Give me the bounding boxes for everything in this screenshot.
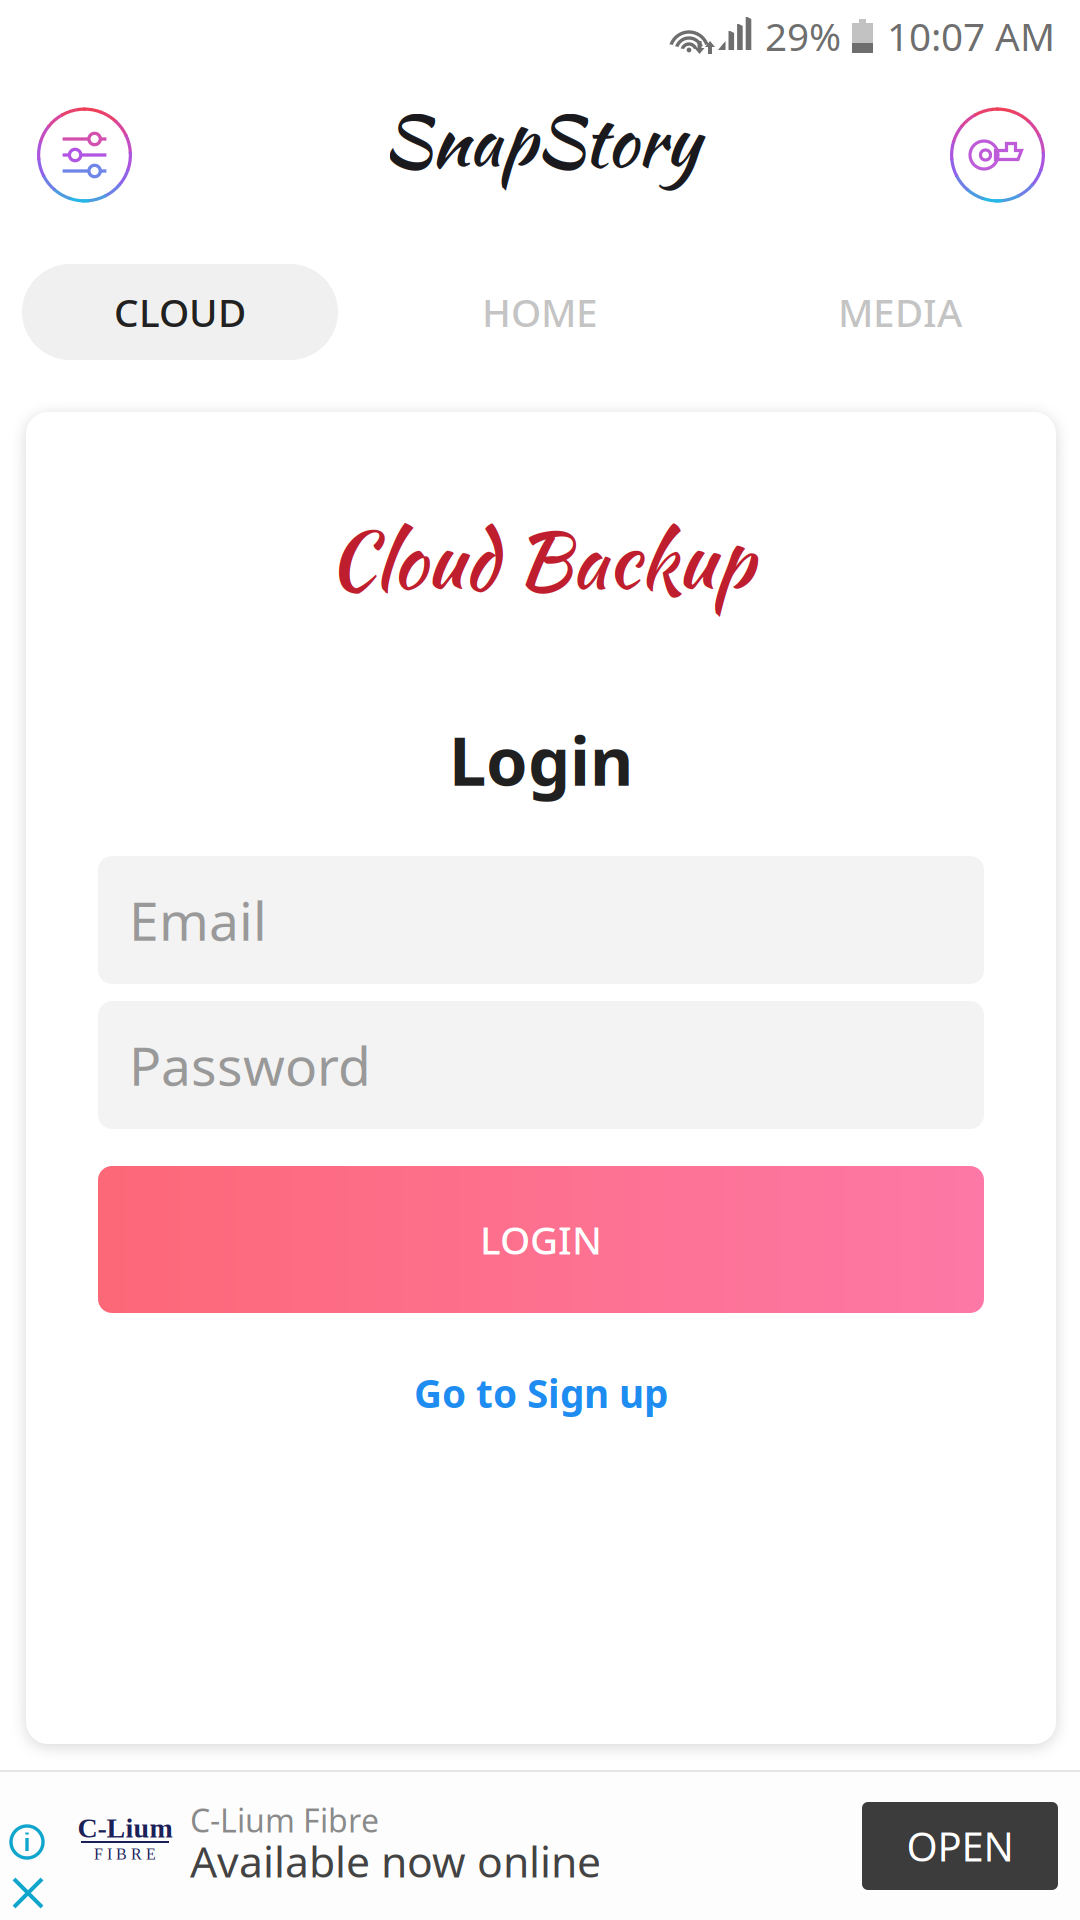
button[interactable]: Passwords	[950, 107, 1045, 202]
staticText: CLOUD	[114, 286, 246, 338]
staticText: LOGIN	[480, 1214, 602, 1265]
button[interactable]: MEDIA	[720, 264, 1080, 360]
staticText: HOME	[482, 286, 598, 338]
staticText: 29%	[765, 10, 841, 62]
staticText: MEDIA	[838, 286, 962, 338]
button[interactable]: HOME	[360, 264, 720, 360]
staticText: F I B R E	[94, 1845, 156, 1863]
button[interactable]: Go to Sign up	[414, 1313, 668, 1413]
staticText: OPEN	[906, 1819, 1013, 1872]
button[interactable]: CLOUD	[0, 264, 360, 360]
staticText: C-Lium Fibre	[190, 1799, 379, 1841]
button[interactable]: OPEN	[862, 1802, 1058, 1890]
staticText: 10:07 AM	[887, 10, 1055, 62]
staticText: Available now online	[190, 1833, 601, 1889]
staticText: Cloud Backup	[328, 504, 754, 616]
button[interactable]: LOGIN	[26, 1129, 1056, 1313]
button[interactable]: Settings	[37, 107, 132, 202]
staticText: Email	[129, 885, 267, 955]
staticText: SnapStory	[382, 91, 699, 191]
staticText: Password	[129, 1030, 371, 1100]
staticText: Go to Sign up	[414, 1367, 668, 1419]
button[interactable]: Close ad	[12, 1877, 44, 1909]
staticText: Login	[449, 716, 633, 804]
button[interactable]: Ad information	[10, 1825, 46, 1861]
staticText: C-Lium	[77, 1812, 172, 1843]
